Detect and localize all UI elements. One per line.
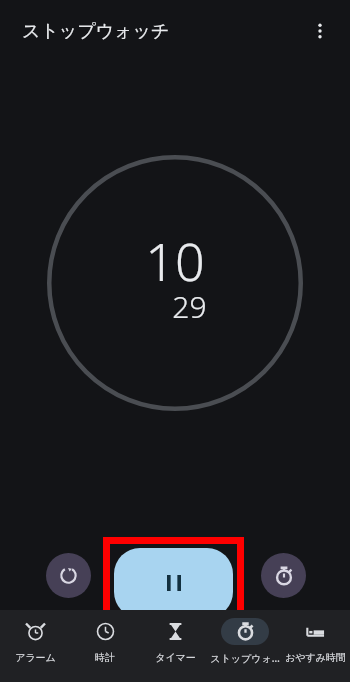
- staticText: 29: [172, 286, 207, 327]
- staticText: アラーム: [15, 651, 56, 664]
- staticText: おやすみ時間: [285, 651, 346, 664]
- staticText: ストップウォッチ: [22, 20, 170, 43]
- button[interactable]: タイマー: [140, 610, 210, 682]
- button[interactable]: Reset: [46, 553, 91, 598]
- button[interactable]: Lap: [261, 553, 306, 598]
- staticText: 時計: [95, 651, 115, 664]
- button[interactable]: Pause: [114, 548, 233, 618]
- button[interactable]: ストップウォ…: [210, 610, 280, 682]
- button[interactable]: おやすみ時間: [280, 610, 350, 682]
- staticText: タイマー: [155, 651, 196, 664]
- button[interactable]: 時計: [70, 610, 140, 682]
- button[interactable]: More options: [300, 11, 340, 51]
- staticText: ストップウォ…: [210, 651, 280, 665]
- staticText: 10: [145, 225, 205, 296]
- button[interactable]: アラーム: [0, 610, 70, 682]
